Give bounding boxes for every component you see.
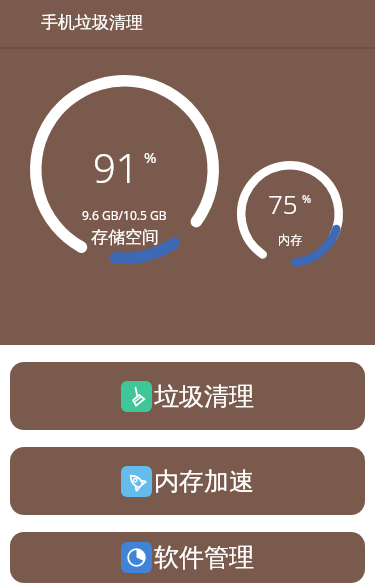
staticText: % (302, 191, 312, 206)
staticText: 75 (268, 186, 298, 221)
staticText: 手机垃圾清理 (41, 12, 143, 33)
button[interactable]: Junk clean (10, 362, 365, 430)
staticText: 存储空间 (91, 227, 159, 248)
button[interactable]: App manager (10, 532, 365, 583)
staticText: 91 (93, 140, 139, 194)
button[interactable]: Memory boost (10, 447, 365, 515)
staticText: 软件管理 (154, 542, 254, 573)
staticText: % (144, 147, 157, 167)
staticText: 垃圾清理 (154, 381, 254, 412)
staticText: 内存 (278, 232, 302, 247)
staticText: 内存加速 (154, 466, 254, 497)
staticText: 9.6 GB/10.5 GB (82, 207, 167, 223)
